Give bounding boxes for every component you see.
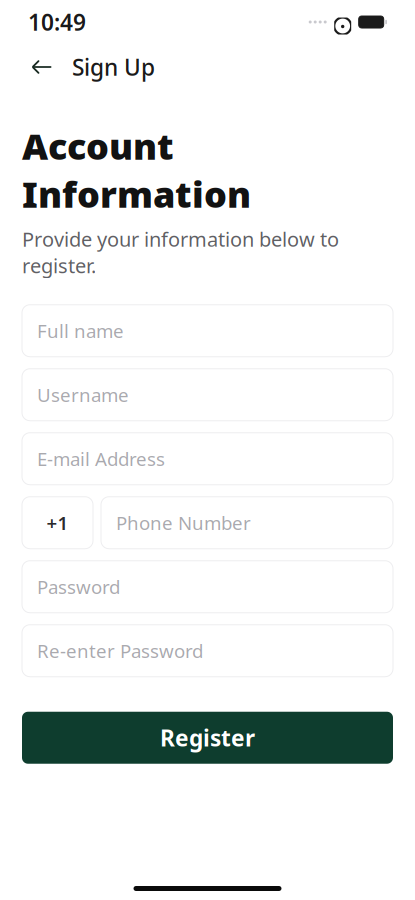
staticText: Re-enter Password <box>37 638 203 663</box>
button[interactable]: Country code, plus 1 <box>22 497 93 549</box>
staticText: Provide your information below to regist… <box>22 226 339 279</box>
button[interactable]: Password <box>22 561 393 613</box>
staticText: Password <box>37 574 120 599</box>
button[interactable]: Full name <box>22 305 393 357</box>
staticText: Register <box>160 723 255 753</box>
button[interactable]: Back <box>22 47 62 87</box>
staticText: Username <box>37 382 129 407</box>
staticText: Sign Up <box>72 52 155 82</box>
button[interactable]: Sign Up <box>62 44 155 90</box>
staticText: 10:49 <box>28 7 86 37</box>
button[interactable]: Phone Number <box>101 497 393 549</box>
staticText: +1 <box>46 510 68 535</box>
staticText: E-mail Address <box>37 446 165 471</box>
button[interactable]: Register <box>22 712 393 764</box>
button[interactable]: Re-enter Password <box>22 625 393 677</box>
staticText: Phone Number <box>116 510 251 535</box>
staticText: Account Information <box>22 122 251 218</box>
button[interactable]: E-mail Address <box>22 433 393 485</box>
staticText: Full name <box>37 318 124 343</box>
button[interactable]: Username <box>22 369 393 421</box>
